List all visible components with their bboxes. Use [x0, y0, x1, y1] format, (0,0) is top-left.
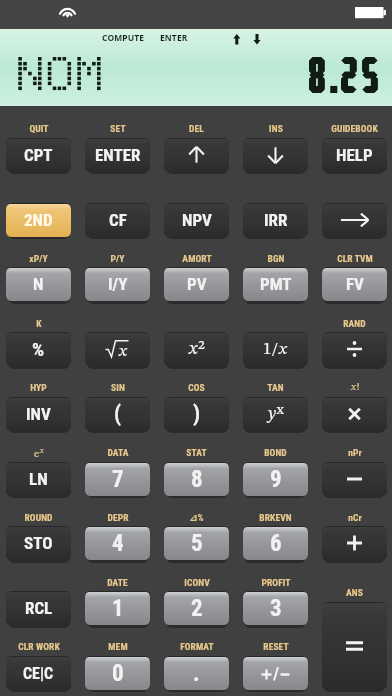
button[interactable]: NPV [164, 203, 229, 237]
button[interactable]: 0 [85, 656, 150, 690]
button[interactable]: 8 [164, 462, 229, 496]
button[interactable]: 7 [85, 462, 150, 496]
button[interactable]: Equals [322, 602, 387, 689]
staticText: ANS [346, 587, 363, 598]
staticText: RCL [25, 598, 53, 618]
staticText: ENTER [160, 32, 188, 44]
staticText: ) [193, 401, 201, 427]
button[interactable]: RCL [6, 591, 71, 625]
button[interactable]: CF [85, 203, 150, 237]
button[interactable]: Right arrow [322, 203, 387, 237]
button[interactable]: STO [6, 526, 71, 560]
staticText: CLR TVM [337, 253, 373, 264]
button[interactable]: INV [6, 397, 71, 431]
button[interactable]: 2ND [6, 203, 71, 237]
button[interactable]: Divide [322, 332, 387, 366]
staticText: PMT [260, 274, 292, 294]
button[interactable]: Multiply [322, 397, 387, 431]
staticText: 𝑥! [350, 382, 360, 393]
staticText: 8 [191, 466, 203, 493]
staticText: INV [26, 404, 51, 424]
staticText: 1 [112, 595, 124, 622]
staticText: NPV [182, 210, 212, 230]
staticText: ⊿% [189, 512, 204, 523]
staticText: CF [109, 210, 127, 230]
staticText: BOND [264, 447, 287, 458]
button[interactable]: Down [243, 138, 308, 172]
button[interactable]: 6 [243, 526, 308, 560]
button[interactable]: % [6, 332, 71, 366]
button[interactable]: Plus [322, 526, 387, 560]
staticText: INS [269, 123, 283, 134]
button[interactable]: 4 [85, 526, 150, 560]
button[interactable]: ENTER [85, 138, 150, 172]
button[interactable]: CE|C [6, 656, 71, 690]
staticText: STO [24, 533, 53, 553]
staticText: CPT [24, 145, 53, 165]
staticText: nPr [348, 447, 362, 458]
staticText: % [32, 338, 45, 360]
staticText: 5 [191, 530, 203, 557]
staticText: 6 [270, 530, 282, 557]
staticText: ICONV [184, 577, 210, 588]
button[interactable]: N [6, 267, 71, 301]
button[interactable]: 1/𝑥 [243, 332, 308, 366]
staticText: RAND [343, 318, 366, 329]
button[interactable]: 9 [243, 462, 308, 496]
button[interactable]: Plus minus [243, 656, 308, 690]
staticText: SIN [111, 382, 125, 393]
button[interactable]: 𝑥² [164, 332, 229, 366]
staticText: HYP [30, 382, 47, 393]
staticText: 4 [112, 530, 124, 557]
button[interactable]: ( [85, 397, 150, 431]
button[interactable]: 3 [243, 591, 308, 625]
button[interactable]: sqrt [85, 332, 150, 366]
button[interactable]: IRR [243, 203, 308, 237]
staticText: 9 [270, 466, 282, 493]
button[interactable]: PV [164, 267, 229, 301]
button[interactable]: LN [6, 462, 71, 496]
staticText: BRKEVN [259, 512, 292, 523]
staticText: ( [114, 401, 122, 427]
staticText: DATE [107, 577, 128, 588]
staticText: K [36, 318, 42, 329]
staticText: BGN [267, 253, 285, 264]
button[interactable]: HELP [322, 138, 387, 172]
button[interactable]: Minus [322, 462, 387, 496]
staticText: 𝑥 [118, 343, 128, 360]
staticText: AMORT [182, 253, 212, 264]
staticText: IRR [264, 210, 288, 230]
staticText: PROFIT [261, 577, 291, 588]
button[interactable]: 2 [164, 591, 229, 625]
staticText: CE|C [23, 664, 54, 683]
staticText: N [33, 274, 44, 294]
staticText: e𝑥 [34, 447, 44, 459]
staticText: 0 [112, 660, 124, 687]
button[interactable]: FV [322, 267, 387, 301]
staticText: ROUND [24, 512, 53, 523]
staticText: DEL [189, 123, 204, 134]
staticText: RESET [263, 641, 289, 652]
staticText: HELP [336, 145, 373, 165]
staticText: QUIT [29, 123, 49, 134]
staticText: I/Y [108, 274, 128, 294]
staticText: P/Y [110, 253, 125, 264]
button[interactable]: 1 [85, 591, 150, 625]
staticText: FV [346, 274, 364, 294]
button[interactable]: I/Y [85, 267, 150, 301]
staticText: FORMAT [180, 641, 214, 652]
button[interactable]: CPT [6, 138, 71, 172]
button[interactable]: 𝑦ˣ [243, 397, 308, 431]
staticText: nCr [348, 512, 362, 523]
button[interactable]: Up [164, 138, 229, 172]
staticText: DEPR [107, 512, 129, 523]
button[interactable]: . [164, 656, 229, 690]
button[interactable]: PMT [243, 267, 308, 301]
staticText: CLR WORK [18, 641, 60, 652]
staticText: 𝑦ˣ [267, 405, 285, 423]
staticText: COMPUTE [102, 32, 145, 44]
staticText: MEM [108, 641, 128, 652]
button[interactable]: ) [164, 397, 229, 431]
button[interactable]: 5 [164, 526, 229, 560]
staticText: GUIDEBOOK [331, 123, 378, 134]
